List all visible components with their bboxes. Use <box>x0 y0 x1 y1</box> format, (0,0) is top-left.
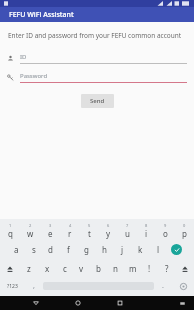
button[interactable]: f <box>59 240 77 259</box>
staticText: u <box>125 228 130 239</box>
staticText: p <box>182 228 187 239</box>
staticText: w <box>27 228 34 239</box>
staticText: a <box>14 244 19 255</box>
staticText: y <box>106 228 111 239</box>
staticText: 3 <box>49 223 52 228</box>
staticText: 6 <box>107 223 110 228</box>
staticText: i <box>145 228 148 239</box>
button[interactable]: 1 <box>0 221 20 240</box>
button[interactable]: Home <box>64 296 92 310</box>
staticText: x <box>45 263 50 274</box>
button[interactable]: n <box>107 259 124 278</box>
button[interactable]: 9 <box>156 221 175 240</box>
staticText: v <box>79 263 84 274</box>
staticText: o <box>163 228 168 239</box>
staticText: z <box>27 263 31 274</box>
button[interactable]: h <box>95 240 113 259</box>
staticText: r <box>68 228 72 239</box>
button[interactable]: ! <box>141 259 158 278</box>
button[interactable]: b <box>90 259 107 278</box>
staticText: f <box>67 244 70 255</box>
button[interactable]: s <box>25 240 42 259</box>
staticText: b <box>96 263 101 274</box>
button[interactable]: Shift <box>0 259 20 278</box>
staticText: Password <box>20 72 48 80</box>
staticText: e <box>48 228 53 239</box>
button[interactable]: m <box>124 259 141 278</box>
button[interactable]: l <box>149 240 167 259</box>
staticText: , <box>33 281 35 291</box>
button[interactable]: Recent apps <box>106 296 134 310</box>
button[interactable]: 6 <box>99 221 118 240</box>
button[interactable]: Back <box>22 296 50 310</box>
button[interactable]: Backspace <box>175 259 194 278</box>
staticText: . <box>162 281 164 291</box>
button[interactable]: Password <box>7 72 187 83</box>
button[interactable]: c <box>56 259 73 278</box>
staticText: h <box>102 244 107 255</box>
staticText: ID <box>20 53 27 61</box>
button[interactable]: a <box>8 240 25 259</box>
button[interactable]: 0 <box>175 221 194 240</box>
button[interactable]: Send <box>81 94 114 108</box>
staticText: s <box>32 244 36 255</box>
button[interactable]: . <box>154 278 172 294</box>
staticText: t <box>88 228 91 239</box>
staticText: 5 <box>88 223 91 228</box>
button[interactable]: x <box>38 259 56 278</box>
button[interactable]: 8 <box>137 221 156 240</box>
staticText: j <box>121 244 124 255</box>
staticText: 9 <box>164 223 167 228</box>
staticText: FEFU WiFi Assistant <box>9 10 74 20</box>
staticText: 4 <box>69 223 72 228</box>
staticText: ?123 <box>7 283 18 290</box>
staticText: l <box>157 244 160 255</box>
staticText: 2 <box>29 223 32 228</box>
button[interactable]: ID <box>7 53 187 64</box>
staticText: m <box>129 263 137 274</box>
staticText: 0 <box>183 223 186 228</box>
button[interactable]: ? <box>158 259 175 278</box>
staticText: ! <box>148 263 151 274</box>
button[interactable]: 2 <box>20 221 40 240</box>
button[interactable]: v <box>73 259 90 278</box>
staticText: c <box>63 263 67 274</box>
button[interactable]: 3 <box>40 221 60 240</box>
staticText: k <box>138 244 143 255</box>
button[interactable]: Enter <box>167 240 185 259</box>
staticText: d <box>48 244 53 255</box>
button[interactable]: 7 <box>118 221 137 240</box>
button[interactable]: 4 <box>60 221 80 240</box>
staticText: n <box>113 263 118 274</box>
button[interactable]: , <box>25 278 43 294</box>
button[interactable]: ?123 <box>0 278 25 294</box>
button[interactable]: j <box>113 240 131 259</box>
button[interactable]: 5 <box>80 221 99 240</box>
staticText: 7 <box>126 223 129 228</box>
staticText: 8 <box>145 223 148 228</box>
staticText: ? <box>165 263 169 274</box>
staticText: g <box>84 244 89 255</box>
staticText: Send <box>90 97 105 105</box>
button[interactable]: Emoji <box>172 278 194 294</box>
staticText: q <box>8 228 13 239</box>
staticText: 1 <box>9 223 12 228</box>
staticText: Enter ID and password from your FEFU com… <box>8 31 182 40</box>
button[interactable]: k <box>131 240 149 259</box>
button[interactable]: z <box>20 259 38 278</box>
button[interactable]: Hide keyboard <box>171 296 194 310</box>
button[interactable]: d <box>42 240 59 259</box>
button[interactable]: g <box>77 240 95 259</box>
